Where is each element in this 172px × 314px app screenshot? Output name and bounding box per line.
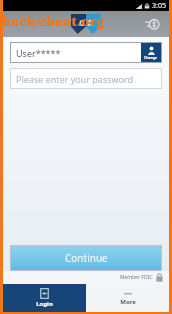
staticText: hack-cheat.org	[2, 12, 105, 30]
staticText: More	[120, 298, 136, 306]
staticText: Login	[36, 300, 53, 308]
button[interactable]: Login	[3, 284, 86, 312]
staticText: Continue	[65, 251, 108, 265]
button[interactable]: Bank logo	[71, 14, 101, 34]
staticText: C	[87, 16, 93, 28]
staticText: Member FDIC	[120, 274, 153, 281]
button[interactable]: Please enter your password	[10, 68, 162, 89]
staticText: 3:05	[152, 1, 166, 11]
staticText: Change	[144, 55, 158, 60]
button[interactable]: Rates	[143, 15, 161, 33]
staticText: Please enter your password	[16, 73, 134, 85]
button[interactable]: Change	[141, 43, 161, 62]
button[interactable]: More	[86, 284, 169, 312]
button[interactable]: Continue	[10, 245, 162, 271]
staticText: C	[79, 16, 85, 28]
staticText: User*****	[16, 47, 61, 59]
